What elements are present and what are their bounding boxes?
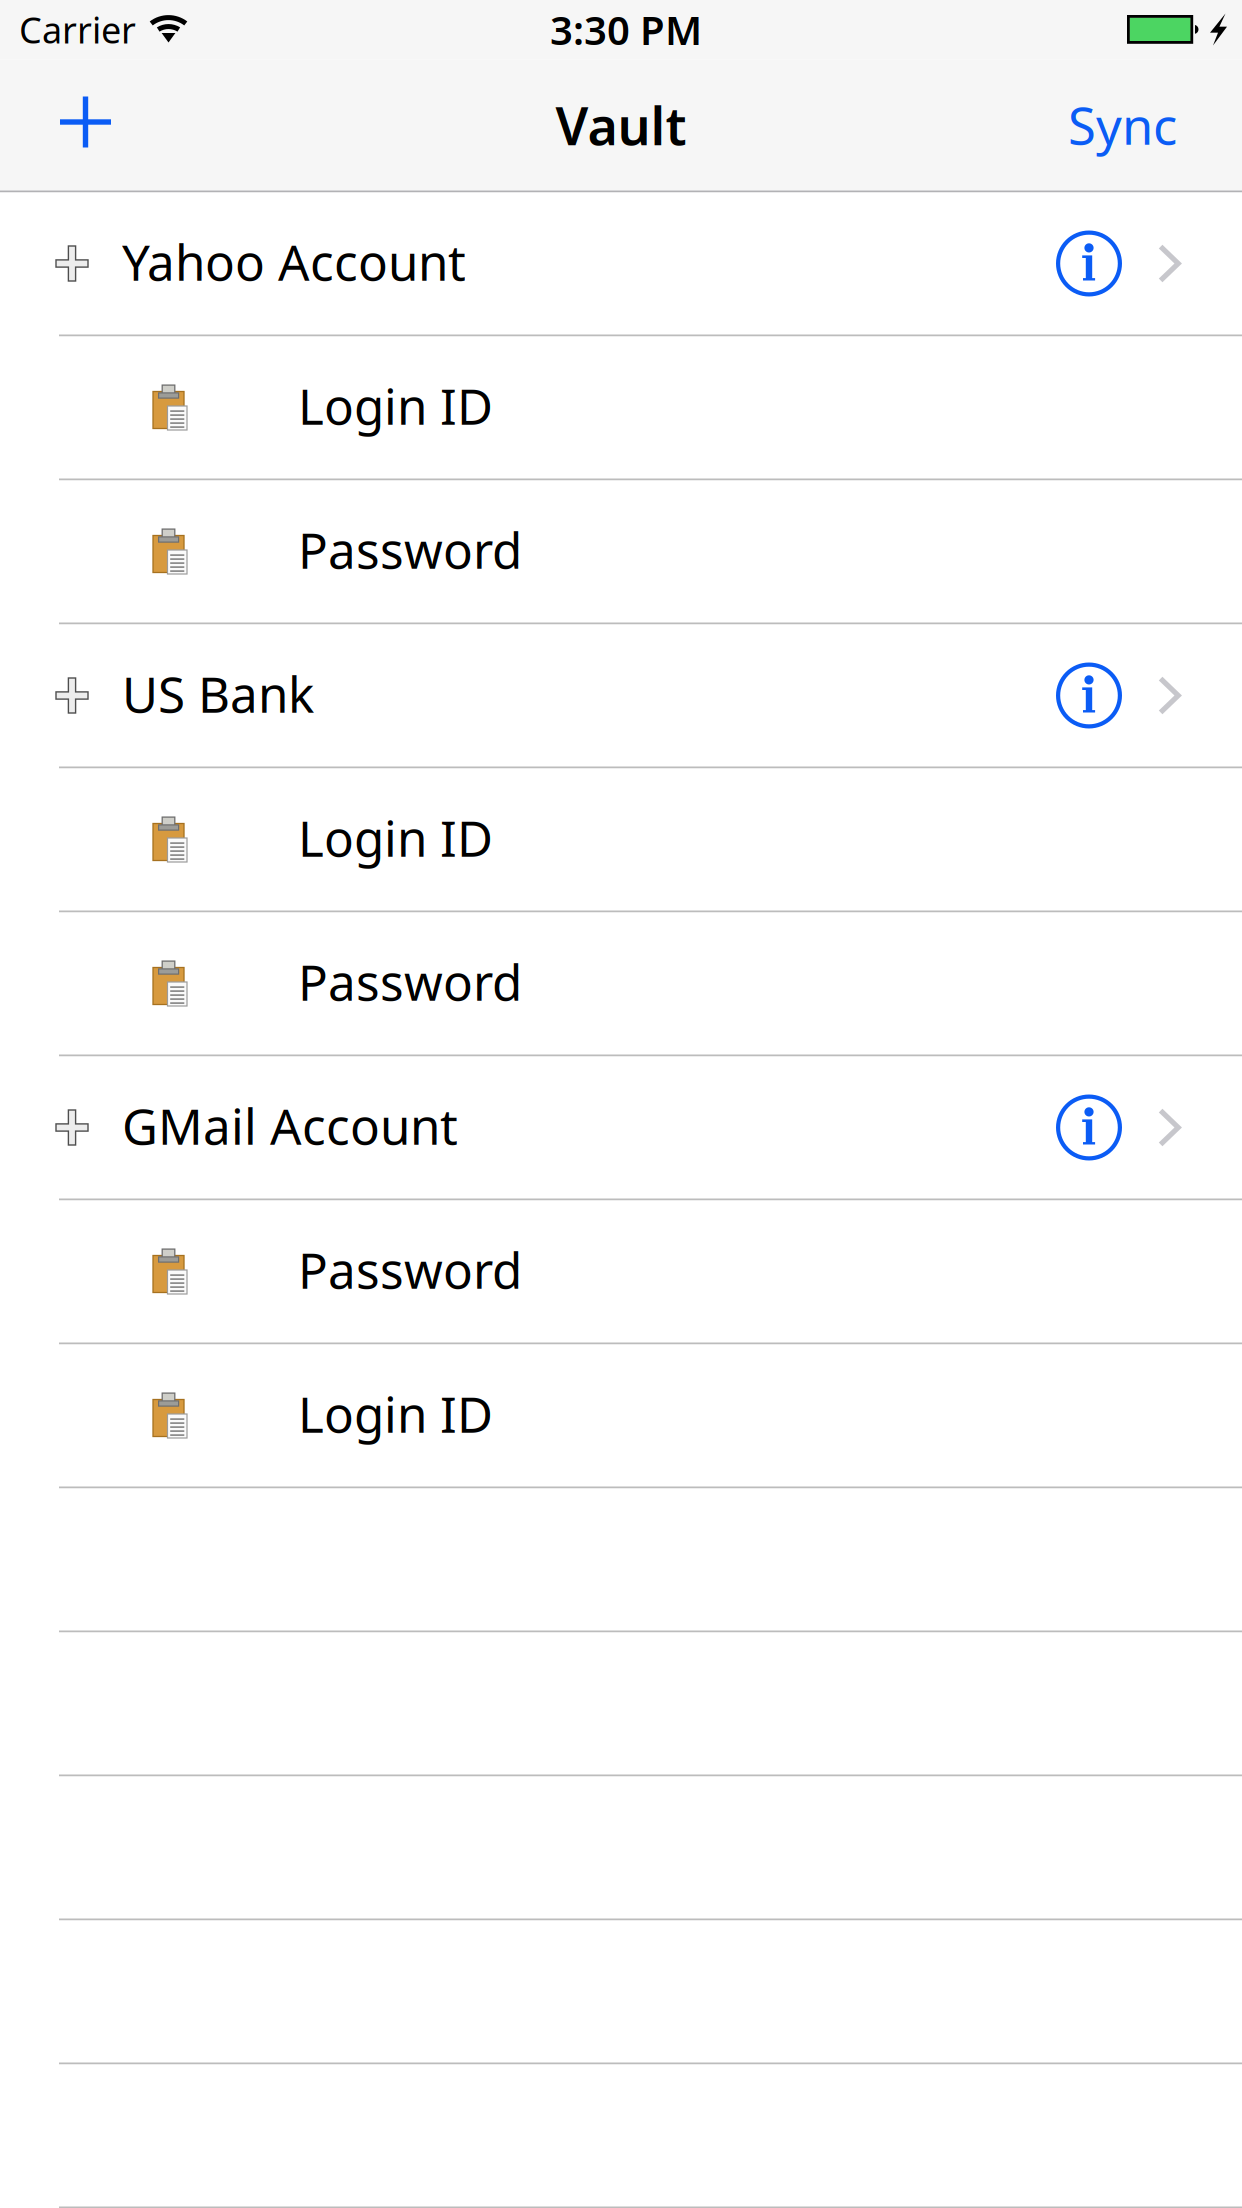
button[interactable]: Yahoo Account — [0, 192, 1242, 334]
button[interactable]: Sync — [1040, 59, 1242, 190]
button[interactable]: GMail Account — [0, 1056, 1242, 1198]
button[interactable]: Password — [0, 480, 1242, 622]
button[interactable]: Account info — [1034, 192, 1144, 334]
staticText: Login ID — [298, 373, 493, 438]
staticText: Yahoo Account — [122, 229, 466, 294]
staticText: Password — [298, 949, 522, 1014]
button[interactable]: Account info — [1034, 1056, 1144, 1198]
button[interactable]: Account info — [1034, 624, 1144, 766]
button[interactable]: Login ID — [0, 768, 1242, 910]
button[interactable]: Login ID — [0, 336, 1242, 478]
staticText: Login ID — [298, 1381, 493, 1446]
staticText: Password — [298, 517, 522, 582]
button[interactable]: Password — [0, 1200, 1242, 1342]
staticText: Sync — [1068, 91, 1177, 159]
button[interactable]: Login ID — [0, 1344, 1242, 1486]
staticText: Password — [298, 1237, 522, 1302]
staticText: US Bank — [122, 661, 314, 726]
staticText: Carrier — [19, 6, 136, 53]
button[interactable]: US Bank — [0, 624, 1242, 766]
staticText: 3:30 PM — [550, 3, 702, 56]
staticText: Login ID — [298, 805, 493, 870]
button[interactable]: Add item — [0, 59, 135, 190]
button[interactable]: Password — [0, 912, 1242, 1054]
staticText: GMail Account — [122, 1093, 458, 1158]
staticText: Vault — [555, 90, 686, 160]
